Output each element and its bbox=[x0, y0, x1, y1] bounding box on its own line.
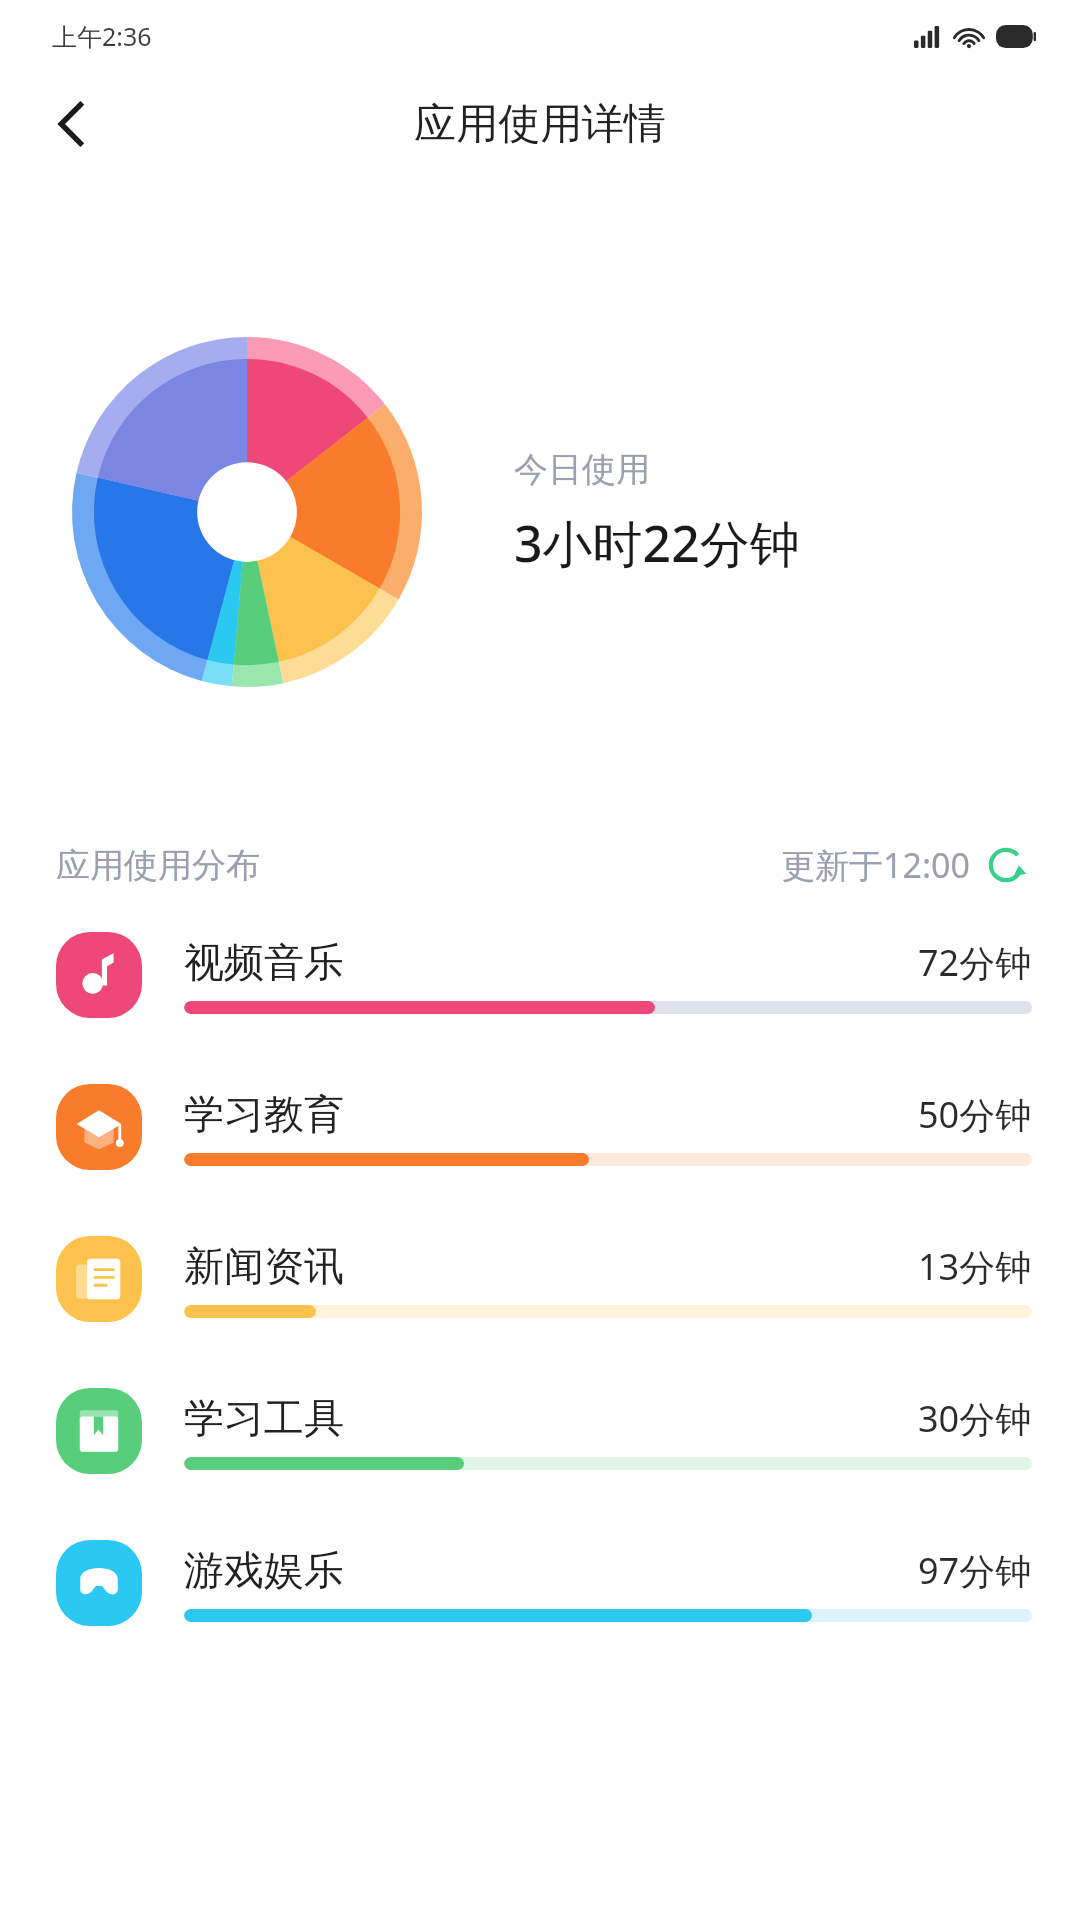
button[interactable]: 学习工具 bbox=[0, 1388, 1080, 1474]
staticText: 上午2:36 bbox=[52, 19, 152, 53]
staticText: 新闻资讯 bbox=[184, 1241, 344, 1291]
staticText: 50分钟 bbox=[918, 1090, 1032, 1139]
button[interactable]: 游戏娱乐 bbox=[0, 1540, 1080, 1626]
staticText: 视频音乐 bbox=[184, 937, 344, 987]
staticText: 97分钟 bbox=[918, 1546, 1032, 1595]
staticText: 今日使用 bbox=[514, 448, 650, 491]
staticText: 更新于12:00 bbox=[781, 842, 970, 888]
button[interactable]: Back bbox=[36, 87, 110, 161]
button[interactable]: 视频音乐 bbox=[0, 932, 1080, 1018]
staticText: 3小时22分钟 bbox=[514, 509, 800, 577]
staticText: 学习工具 bbox=[184, 1393, 344, 1443]
staticText: 应用使用详情 bbox=[414, 98, 666, 151]
staticText: 学习教育 bbox=[184, 1089, 344, 1139]
staticText: 应用使用分布 bbox=[56, 844, 260, 887]
staticText: 游戏娱乐 bbox=[184, 1545, 344, 1595]
staticText: 13分钟 bbox=[918, 1242, 1032, 1291]
button[interactable]: 更新于12:00 bbox=[775, 836, 1032, 894]
button[interactable]: 学习教育 bbox=[0, 1084, 1080, 1170]
staticText: 30分钟 bbox=[918, 1394, 1032, 1443]
other: Refresh bbox=[986, 845, 1026, 885]
button[interactable]: 新闻资讯 bbox=[0, 1236, 1080, 1322]
staticText: 72分钟 bbox=[918, 938, 1032, 987]
